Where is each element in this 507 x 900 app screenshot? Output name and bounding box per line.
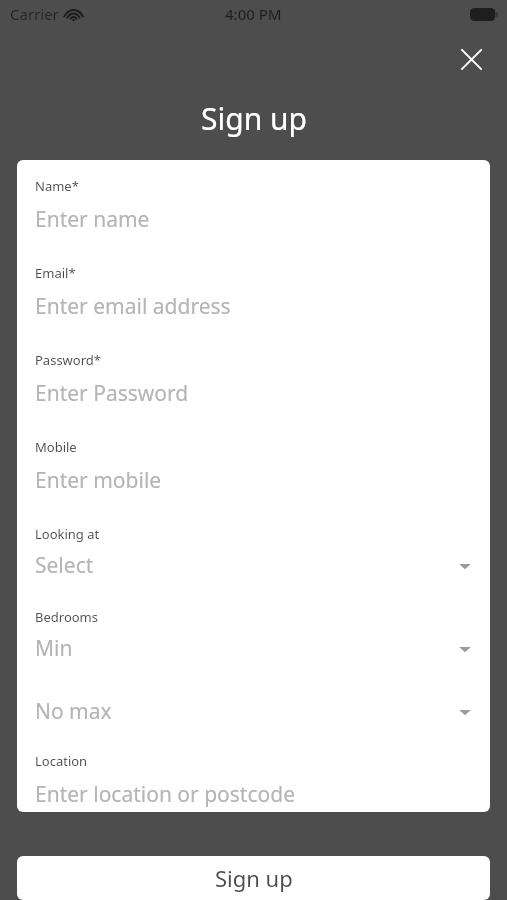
staticText: Enter Password — [35, 379, 189, 408]
button[interactable]: Name* — [17, 160, 490, 234]
staticText: Sign up — [201, 98, 307, 139]
button[interactable]: Close — [449, 37, 493, 81]
button[interactable]: Select — [17, 551, 490, 580]
staticText: Min — [35, 634, 73, 663]
staticText: Name* — [35, 177, 79, 195]
staticText: Enter location or postcode — [35, 780, 295, 809]
staticText: Select — [35, 551, 94, 580]
staticText: Enter mobile — [35, 466, 162, 495]
staticText: Location — [35, 752, 88, 770]
staticText: Mobile — [35, 438, 77, 456]
staticText: Sign up — [215, 863, 293, 893]
staticText: 4:00 PM — [225, 4, 282, 24]
button[interactable]: Email* — [17, 234, 490, 321]
button[interactable]: Enter location or postcode — [17, 780, 490, 809]
button[interactable]: Mobile — [17, 408, 490, 495]
staticText: Email* — [35, 264, 76, 282]
staticText: Enter name — [35, 205, 150, 234]
staticText: Looking at — [35, 525, 100, 543]
staticText: Enter email address — [35, 292, 231, 321]
staticText: No max — [35, 697, 112, 726]
staticText: Password* — [35, 351, 101, 369]
button[interactable]: Sign up — [17, 856, 490, 900]
button[interactable]: Min — [17, 634, 490, 663]
button[interactable]: No max — [17, 697, 490, 726]
button[interactable]: Password* — [17, 321, 490, 408]
staticText: Bedrooms — [35, 608, 98, 626]
staticText: Carrier — [10, 4, 59, 24]
